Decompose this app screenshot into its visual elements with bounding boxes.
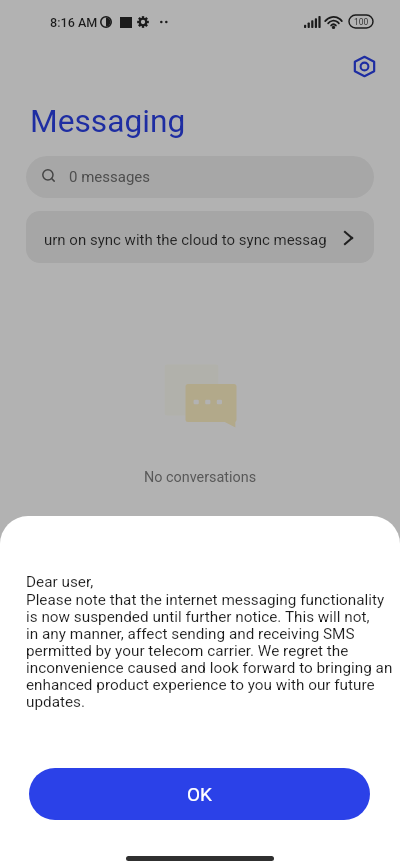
- staticText: 100: [354, 17, 369, 27]
- staticText: urn on sync with the cloud to sync messa…: [44, 231, 326, 249]
- staticText: Dear user, Please note that the internet…: [26, 573, 393, 711]
- staticText: 8:16 AM: [50, 15, 98, 30]
- button[interactable]: urn on sync with the cloud to sync messa…: [26, 211, 374, 263]
- staticText: Messaging: [30, 103, 186, 140]
- staticText: No conversations: [144, 469, 257, 486]
- button[interactable]: 0 messages: [26, 156, 374, 198]
- staticText: 0 messages: [69, 168, 151, 186]
- staticText: OK: [187, 783, 212, 805]
- button[interactable]: OK: [29, 768, 370, 820]
- button[interactable]: Settings: [351, 53, 377, 79]
